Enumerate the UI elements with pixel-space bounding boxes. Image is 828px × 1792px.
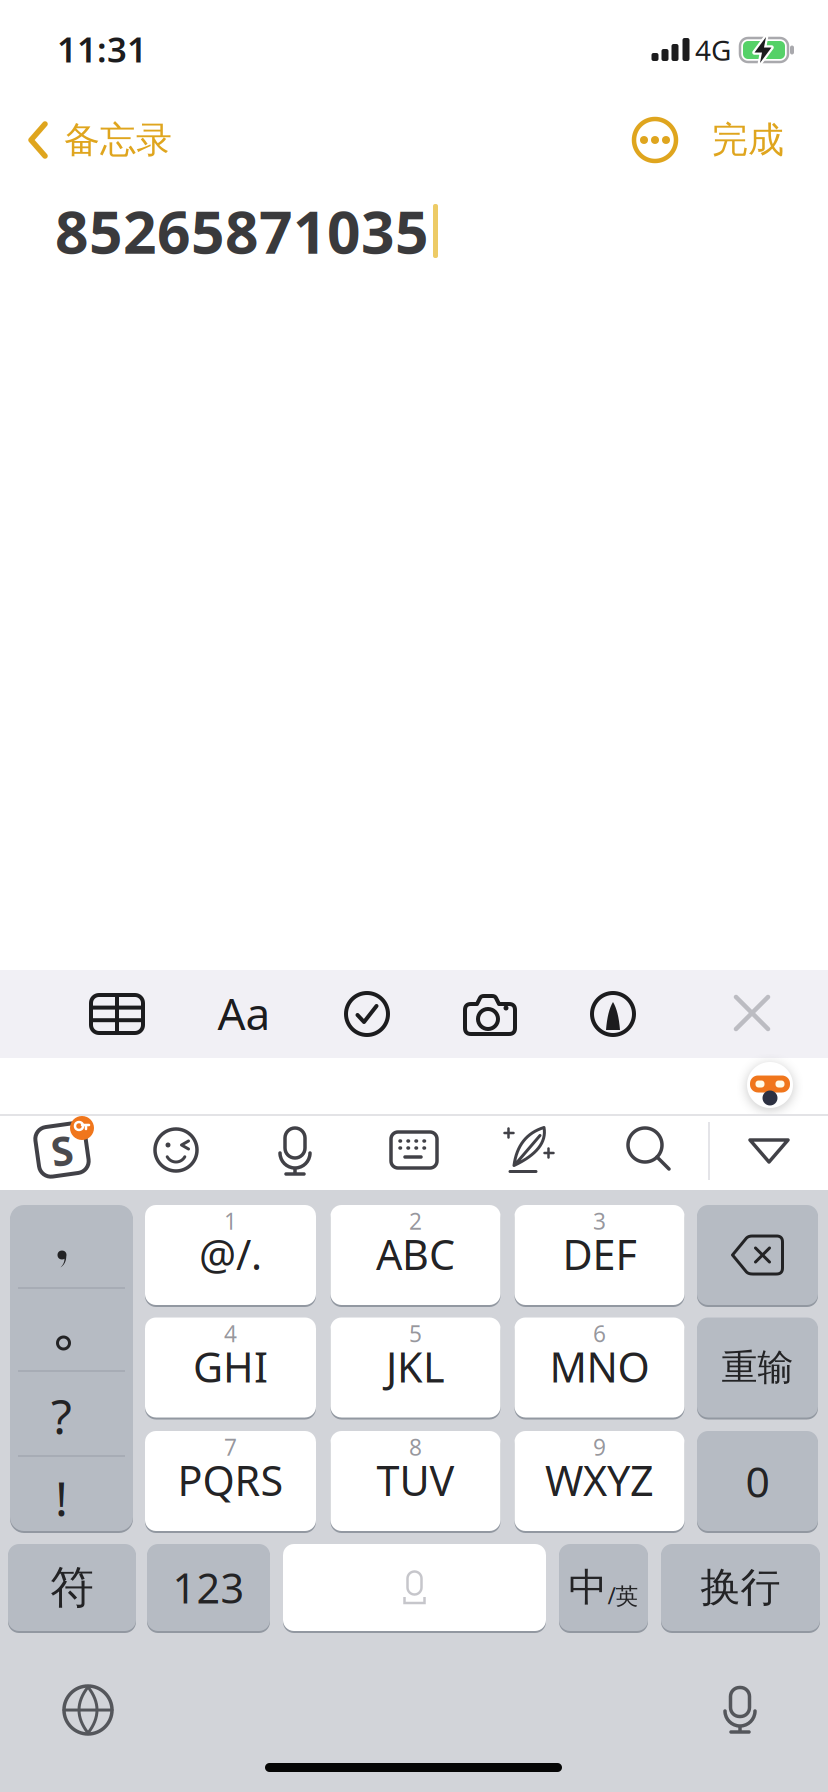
staticText: 重输 — [721, 1345, 793, 1390]
button[interactable]: 换行 — [661, 1544, 820, 1631]
button[interactable]: Voice input — [273, 1127, 317, 1175]
staticText: MNO — [549, 1339, 649, 1394]
button[interactable]: 5 — [330, 1317, 500, 1417]
staticText: 备忘录 — [64, 118, 172, 162]
button[interactable]: 9 — [514, 1431, 684, 1531]
staticText: 0 — [745, 1453, 769, 1509]
staticText: Aa — [217, 984, 270, 1042]
staticText: 8 — [409, 1432, 422, 1462]
button[interactable]: 6 — [514, 1317, 684, 1417]
staticText: 85265871035 — [55, 192, 429, 270]
button[interactable]: Dictate — [717, 1687, 763, 1733]
button[interactable]: Emoji — [153, 1127, 199, 1173]
staticText: GHI — [193, 1339, 268, 1394]
button[interactable]: 7 — [145, 1431, 316, 1531]
staticText: DEF — [562, 1227, 636, 1281]
button[interactable]: 0 — [697, 1431, 818, 1531]
button[interactable]: More — [634, 119, 676, 161]
button[interactable]: 重输 — [697, 1317, 818, 1417]
staticText: 符 — [50, 1560, 94, 1614]
button[interactable]: 8 — [330, 1431, 500, 1531]
staticText: 1 — [224, 1206, 237, 1236]
staticText: PQRS — [177, 1453, 283, 1507]
staticText: 2 — [409, 1206, 422, 1236]
button[interactable]: Handwriting — [504, 1126, 556, 1174]
staticText: 中 — [568, 1564, 607, 1611]
button[interactable]: 4 — [145, 1317, 316, 1417]
staticText: 3 — [593, 1206, 606, 1236]
button[interactable]: Back to Notes — [28, 118, 172, 162]
staticText: JKL — [386, 1339, 445, 1394]
button[interactable]: Close — [736, 997, 768, 1029]
staticText: ! — [55, 1466, 68, 1530]
button[interactable]: Sogou assistant — [746, 1061, 794, 1109]
staticText: ? — [51, 1384, 72, 1448]
button[interactable]: Space — [283, 1544, 546, 1631]
button[interactable]: Checklist — [344, 991, 390, 1037]
button[interactable]: 符 — [8, 1544, 136, 1631]
staticText: S — [51, 1123, 73, 1176]
button[interactable]: Next keyboard — [62, 1684, 114, 1736]
staticText: /英 — [607, 1580, 638, 1610]
staticText: @/. — [199, 1227, 262, 1281]
button[interactable]: Text format — [217, 984, 270, 1042]
button[interactable]: 中 — [559, 1544, 648, 1631]
staticText: TUV — [376, 1453, 454, 1507]
button[interactable]: 3 — [514, 1205, 684, 1305]
button[interactable]: Search — [628, 1128, 670, 1170]
staticText: 4G — [695, 31, 731, 69]
button[interactable]: Camera — [465, 994, 515, 1036]
staticText: 6 — [593, 1318, 606, 1348]
button[interactable]: Punctuation — [10, 1205, 133, 1531]
staticText: 5 — [409, 1318, 422, 1348]
staticText: 11:31 — [57, 26, 147, 72]
button[interactable]: Keyboard layouts — [389, 1130, 439, 1170]
staticText: 完成 — [712, 118, 784, 162]
button[interactable]: Hide keyboard — [748, 1138, 790, 1164]
staticText: WXYZ — [545, 1453, 654, 1507]
button[interactable]: Markup — [590, 991, 636, 1037]
staticText: 换行 — [700, 1563, 780, 1612]
button[interactable]: 1 — [145, 1205, 316, 1305]
staticText: ABC — [376, 1227, 455, 1281]
staticText: 4 — [224, 1318, 237, 1348]
button[interactable]: 2 — [330, 1205, 500, 1305]
staticText: 9 — [593, 1432, 606, 1462]
button[interactable]: Delete — [697, 1205, 818, 1305]
button[interactable]: Sogou menu — [28, 1116, 96, 1184]
button[interactable]: 123 — [147, 1544, 270, 1631]
button[interactable]: 完成 — [712, 118, 784, 162]
button[interactable]: Insert table — [89, 992, 145, 1036]
staticText: 123 — [172, 1560, 244, 1615]
staticText: 7 — [224, 1432, 237, 1462]
